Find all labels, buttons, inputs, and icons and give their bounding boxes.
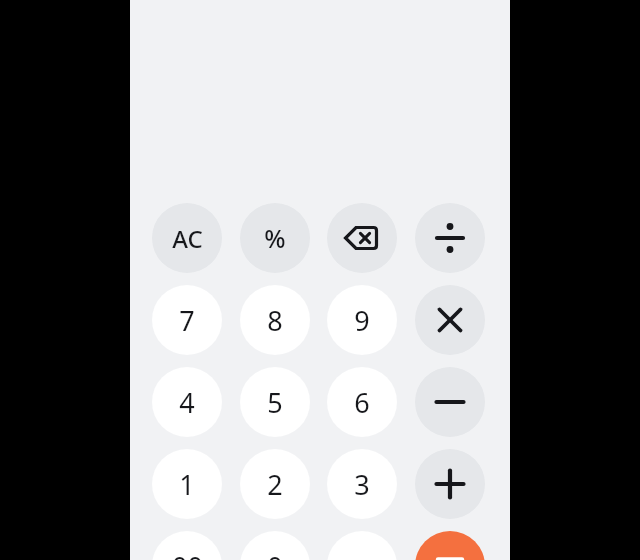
staticText: 5 xyxy=(267,384,283,421)
button[interactable]: % xyxy=(240,203,310,273)
button[interactable]: 6 xyxy=(327,367,397,437)
staticText: 00 xyxy=(172,548,203,560)
button[interactable]: Divide xyxy=(415,203,485,273)
button[interactable]: Minus xyxy=(415,367,485,437)
button[interactable]: AC xyxy=(152,203,222,273)
button[interactable]: Equals xyxy=(415,531,485,560)
staticText: 7 xyxy=(179,302,195,339)
button[interactable]: 5 xyxy=(240,367,310,437)
button[interactable]: 2 xyxy=(240,449,310,519)
button[interactable]: . xyxy=(327,531,397,560)
staticText: % xyxy=(264,221,286,255)
button[interactable]: 1 xyxy=(152,449,222,519)
staticText: 8 xyxy=(267,302,283,339)
button[interactable]: 00 xyxy=(152,531,222,560)
staticText: 4 xyxy=(179,384,195,421)
button[interactable]: 8 xyxy=(240,285,310,355)
staticText: 6 xyxy=(354,384,370,421)
staticText: 1 xyxy=(179,466,195,503)
button[interactable]: 4 xyxy=(152,367,222,437)
staticText: 0 xyxy=(267,548,283,560)
button[interactable]: Multiply xyxy=(415,285,485,355)
staticText: 2 xyxy=(267,466,283,503)
button[interactable]: 9 xyxy=(327,285,397,355)
button[interactable]: Plus xyxy=(415,449,485,519)
button[interactable]: 3 xyxy=(327,449,397,519)
staticText: 3 xyxy=(354,466,370,503)
button[interactable]: 0 xyxy=(240,531,310,560)
staticText: 9 xyxy=(354,302,370,339)
staticText: AC xyxy=(172,222,203,255)
button[interactable]: 7 xyxy=(152,285,222,355)
button[interactable]: Backspace xyxy=(327,203,397,273)
